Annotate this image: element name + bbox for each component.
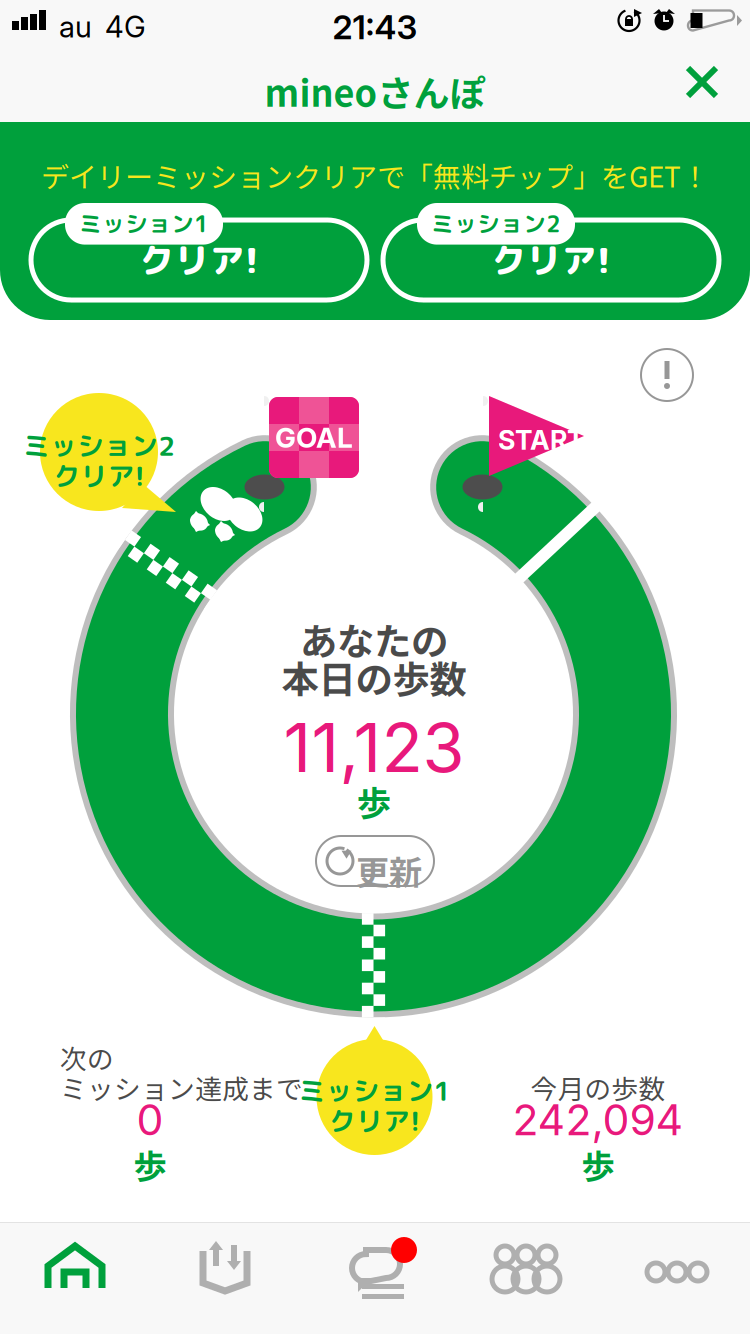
staticText: ミッション1 (79, 208, 209, 240)
button[interactable]: More (0, 0, 750, 1334)
button[interactable]: Data usage (0, 0, 750, 1334)
button[interactable]: Members (0, 0, 750, 1334)
staticText: 4G (105, 9, 146, 44)
staticText: 歩 (356, 776, 391, 826)
staticText: 11,123 (283, 706, 464, 788)
staticText: ミッション達成まで (60, 1068, 303, 1107)
staticText: 0 (136, 1094, 163, 1146)
staticText: 歩 (133, 1140, 166, 1188)
button[interactable]: クリア! (0, 0, 750, 1334)
button[interactable]: Home (0, 0, 750, 1334)
staticText: 次の (60, 1038, 114, 1077)
staticText: mineoさんぽ (264, 65, 485, 117)
staticText: GOAL (275, 421, 353, 454)
button[interactable]: Close (0, 0, 750, 1334)
staticText: ミッション2 (23, 427, 175, 464)
staticText: 今月の歩数 (530, 1068, 665, 1107)
staticText: あなたの (300, 612, 448, 666)
staticText: 歩 (581, 1140, 614, 1188)
staticText: ミッション1 (298, 1072, 450, 1109)
staticText: デイリーミッションクリアで「無料チップ」をGET！ (41, 155, 709, 195)
staticText: 21:43 (332, 7, 417, 47)
staticText: クリア! (329, 1102, 420, 1139)
staticText: クリア! (53, 457, 144, 494)
staticText: ミッション2 (431, 208, 561, 240)
staticText: クリア! (139, 236, 258, 284)
button[interactable]: 更新 (0, 0, 750, 1334)
staticText: 更新 (356, 846, 422, 894)
staticText: クリア! (491, 236, 610, 284)
staticText: au (59, 9, 92, 44)
staticText: 242,094 (512, 1094, 683, 1146)
button[interactable]: Messages (0, 0, 750, 1334)
staticText: 本日の歩数 (281, 650, 466, 704)
button[interactable]: クリア! (0, 0, 750, 1334)
button[interactable]: Information (0, 0, 750, 1334)
staticText: START (498, 424, 585, 456)
